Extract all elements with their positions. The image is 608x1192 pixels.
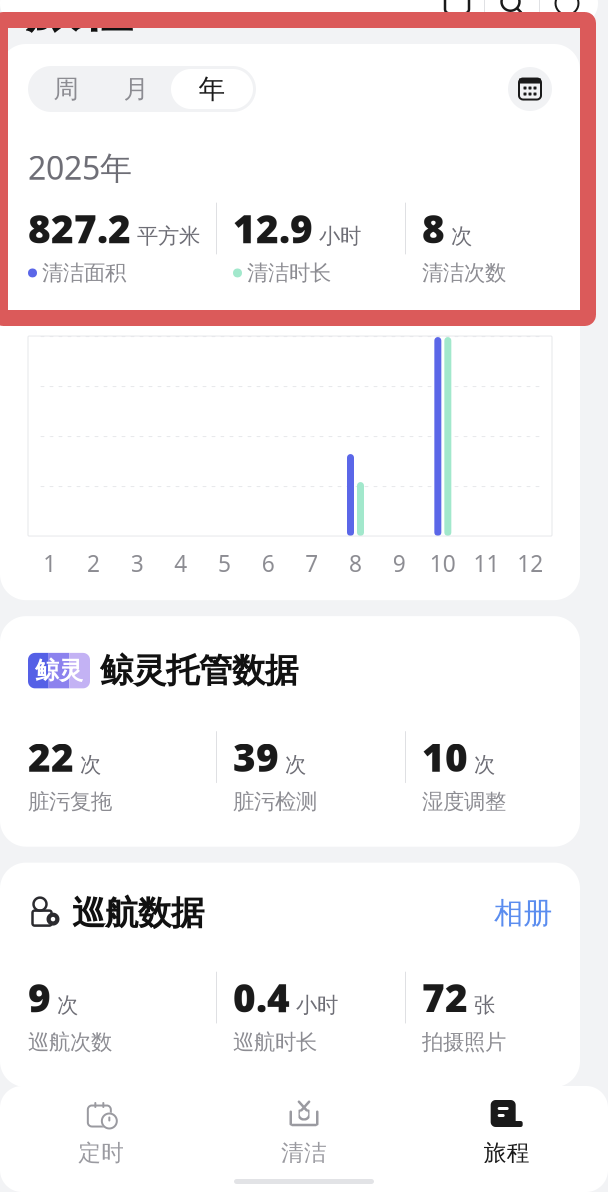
staticText: 2025年 — [28, 146, 132, 188]
staticText: 清洁面积 — [42, 260, 126, 286]
staticText: 周 — [53, 73, 78, 104]
staticText: 脏污复拖 — [28, 788, 112, 815]
staticText: 12.9 — [233, 202, 313, 254]
staticText: 月 — [123, 73, 148, 104]
staticText: 年 — [198, 73, 225, 105]
staticText: 巡航次数 — [28, 1029, 112, 1055]
staticText: 8 — [422, 202, 445, 254]
button[interactable]: 月 — [101, 69, 171, 109]
staticText: 9 — [28, 972, 51, 1023]
staticText: 清洁时长 — [247, 260, 331, 286]
staticText: 39 — [233, 731, 279, 782]
button[interactable]: 相册 — [494, 895, 552, 931]
staticText: 次 — [285, 752, 306, 778]
staticText: 9 — [393, 548, 406, 578]
staticText: 0.4 — [233, 972, 290, 1023]
staticText: 清洁 — [281, 1139, 327, 1167]
staticText: 清洁次数 — [422, 260, 506, 286]
staticText: 12 — [517, 548, 543, 578]
staticText: 次 — [451, 223, 472, 249]
staticText: 7 — [305, 548, 318, 578]
staticText: 鲸灵托管数据 — [100, 650, 298, 691]
staticText: 5 — [218, 548, 231, 578]
button[interactable]: 搜索 — [485, 0, 539, 25]
staticText: 6 — [262, 548, 275, 578]
button[interactable]: 周 — [31, 69, 101, 109]
staticText: 相册 — [494, 895, 552, 931]
staticText: 拍摄照片 — [422, 1029, 506, 1055]
staticText: 11 — [473, 548, 499, 578]
staticText: 湿度调整 — [422, 788, 506, 815]
staticText: 小时 — [319, 223, 361, 249]
staticText: 旅程 — [26, 0, 132, 41]
staticText: 旅程 — [484, 1139, 530, 1167]
staticText: 巡航时长 — [233, 1029, 317, 1055]
staticText: 张 — [474, 992, 495, 1018]
staticText: 次 — [57, 992, 78, 1018]
staticText: 827.2 — [28, 202, 131, 254]
button[interactable]: 旅程 — [405, 1086, 608, 1175]
staticText: 10 — [422, 731, 468, 782]
button[interactable]: 定时 — [0, 1086, 203, 1175]
staticText: 72 — [422, 972, 468, 1023]
button[interactable]: 年 — [171, 69, 253, 109]
staticText: 次 — [474, 752, 495, 778]
staticText: 4 — [174, 548, 187, 578]
staticText: 脏污检测 — [233, 788, 317, 815]
button[interactable]: 清洁 — [203, 1086, 405, 1175]
staticText: 22 — [28, 731, 74, 782]
button[interactable]: 设备 — [430, 0, 484, 25]
staticText: 巡航数据 — [72, 893, 204, 933]
staticText: 8 — [349, 548, 362, 578]
button[interactable]: 我的 — [540, 0, 594, 25]
staticText: 平方米 — [137, 223, 200, 249]
staticText: 10 — [430, 548, 456, 578]
button[interactable]: 选择日期 — [508, 67, 552, 111]
staticText: 定时 — [78, 1139, 124, 1167]
staticText: 鲸灵 — [35, 656, 83, 685]
staticText: 3 — [131, 548, 144, 578]
staticText: 次 — [80, 752, 101, 778]
staticText: 2 — [87, 548, 100, 578]
staticText: 1 — [43, 548, 56, 578]
staticText: 小时 — [296, 992, 338, 1018]
